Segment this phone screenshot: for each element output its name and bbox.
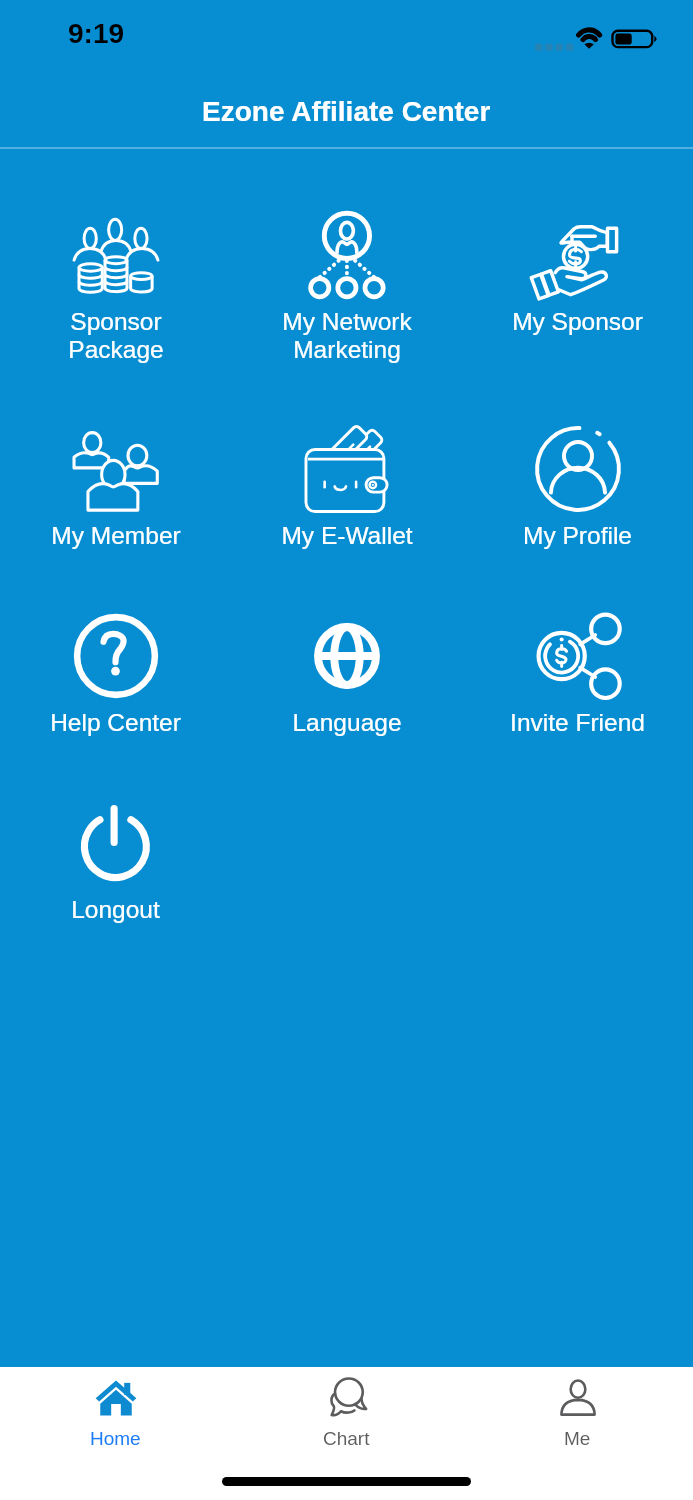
button[interactable]: Sponsor Package <box>0 208 231 422</box>
staticText: My E-Wallet <box>281 522 413 549</box>
staticText: Language <box>292 709 402 736</box>
staticText: My Profile <box>523 522 632 549</box>
staticText: 9:19 <box>68 18 125 49</box>
staticText: Longout <box>71 896 160 923</box>
button[interactable]: Invite Friend <box>462 609 693 796</box>
button[interactable]: My Sponsor <box>462 208 693 422</box>
button[interactable]: Language <box>231 609 462 796</box>
staticText: My Sponsor <box>512 308 643 335</box>
button[interactable]: Longout <box>0 796 231 983</box>
button[interactable]: My Network Marketing <box>231 208 462 422</box>
button[interactable]: Home <box>0 1367 231 1465</box>
staticText: My Member <box>51 522 181 549</box>
staticText: My Network Marketing <box>282 308 412 364</box>
staticText: Invite Friend <box>510 709 645 736</box>
button[interactable]: Chart <box>231 1367 462 1465</box>
staticText: Chart <box>323 1428 370 1449</box>
staticText: Sponsor Package <box>68 308 164 364</box>
button[interactable]: My E-Wallet <box>231 422 462 609</box>
button[interactable]: My Profile <box>462 422 693 609</box>
button[interactable]: Me <box>462 1367 693 1465</box>
staticText: Ezone Affiliate Center <box>202 96 491 127</box>
button[interactable]: Help Center <box>0 609 231 796</box>
button[interactable]: My Member <box>0 422 231 609</box>
staticText: Help Center <box>50 709 181 736</box>
staticText: Home <box>90 1428 141 1449</box>
staticText: Me <box>564 1428 591 1449</box>
